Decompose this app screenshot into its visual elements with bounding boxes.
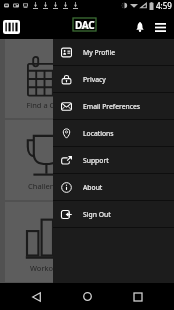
staticText: Email Preferences [83,102,141,111]
button[interactable]: Privacy [53,66,174,92]
staticText: Workouts [30,263,64,273]
button[interactable]: Sign Out [53,201,174,227]
staticText: My Profile [83,48,115,57]
staticText: Challenges [28,181,67,191]
button[interactable]: Recent apps [123,283,153,310]
staticText: Support [83,156,109,165]
staticText: Sign Out [83,210,111,219]
button[interactable]: My Profile [53,39,174,283]
staticText: About [83,183,103,192]
staticText: Locations [83,129,114,138]
button[interactable]: Locations [53,120,174,146]
button[interactable]: Open navigation menu [149,11,172,39]
staticText: 4:59 [156,0,172,11]
button[interactable]: Back [21,283,51,310]
button[interactable]: Notifications [128,11,151,39]
staticText: Privacy [83,75,106,84]
button[interactable]: Challenges [5,120,86,200]
button[interactable]: Home [72,283,102,310]
button[interactable]: Progress [88,202,169,282]
staticText: DAC [75,18,95,31]
button[interactable]: About [53,174,174,200]
button[interactable]: Book Now [88,39,169,118]
button[interactable]: My Profile [53,39,174,65]
staticText: Book Now [112,100,148,110]
staticText: Find a Class [26,100,68,110]
button[interactable]: Rewards [88,120,169,200]
button[interactable]: Workouts [5,202,86,282]
button[interactable]: Scan barcode [0,11,22,39]
button[interactable]: Support [53,147,174,173]
button[interactable]: Find a Class [5,39,86,118]
button[interactable]: Email Preferences [53,93,174,119]
button[interactable]: DAC home [73,18,96,31]
